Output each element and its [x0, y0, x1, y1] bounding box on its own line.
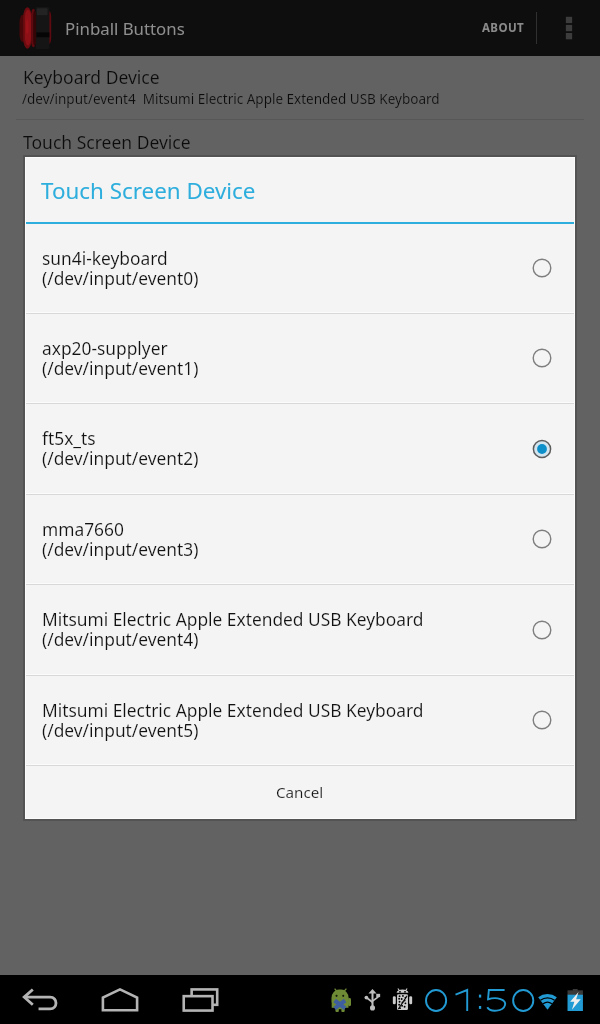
staticText: Touch Screen Device: [41, 175, 256, 206]
button[interactable]: ABOUT: [470, 0, 536, 56]
button[interactable]: ft5x_ts (/dev/input/event2): [26, 404, 574, 493]
staticText: Keyboard Device: [23, 65, 160, 89]
button[interactable]: Cancel: [26, 766, 574, 818]
button[interactable]: More options: [537, 0, 600, 56]
button[interactable]: Recents: [177, 975, 225, 1024]
button[interactable]: Mitsumi Electric Apple Extended USB Keyb…: [26, 676, 574, 764]
staticText: sun4i-keyboard (/dev/input/event0): [42, 246, 199, 291]
staticText: ft5x_ts (/dev/input/event2): [42, 426, 199, 471]
staticText: Mitsumi Electric Apple Extended USB Keyb…: [42, 698, 424, 743]
button[interactable]: mma7660 (/dev/input/event3): [26, 495, 574, 583]
staticText: /dev/input/event4 Mitsumi Electric Apple…: [22, 90, 440, 108]
button[interactable]: sun4i-keyboard (/dev/input/event0): [26, 224, 574, 312]
button[interactable]: Home: [96, 975, 144, 1024]
staticText: Pinball Buttons: [65, 17, 185, 40]
staticText: Touch Screen Device: [23, 130, 191, 154]
staticText: Mitsumi Electric Apple Extended USB Keyb…: [42, 607, 424, 652]
staticText: ABOUT: [482, 20, 525, 36]
staticText: mma7660 (/dev/input/event3): [42, 517, 199, 562]
staticText: axp20-supplyer (/dev/input/event1): [42, 336, 199, 381]
button[interactable]: Back: [16, 975, 64, 1024]
staticText: Cancel: [276, 782, 324, 803]
button[interactable]: Mitsumi Electric Apple Extended USB Keyb…: [26, 585, 574, 674]
button[interactable]: axp20-supplyer (/dev/input/event1): [26, 314, 574, 402]
